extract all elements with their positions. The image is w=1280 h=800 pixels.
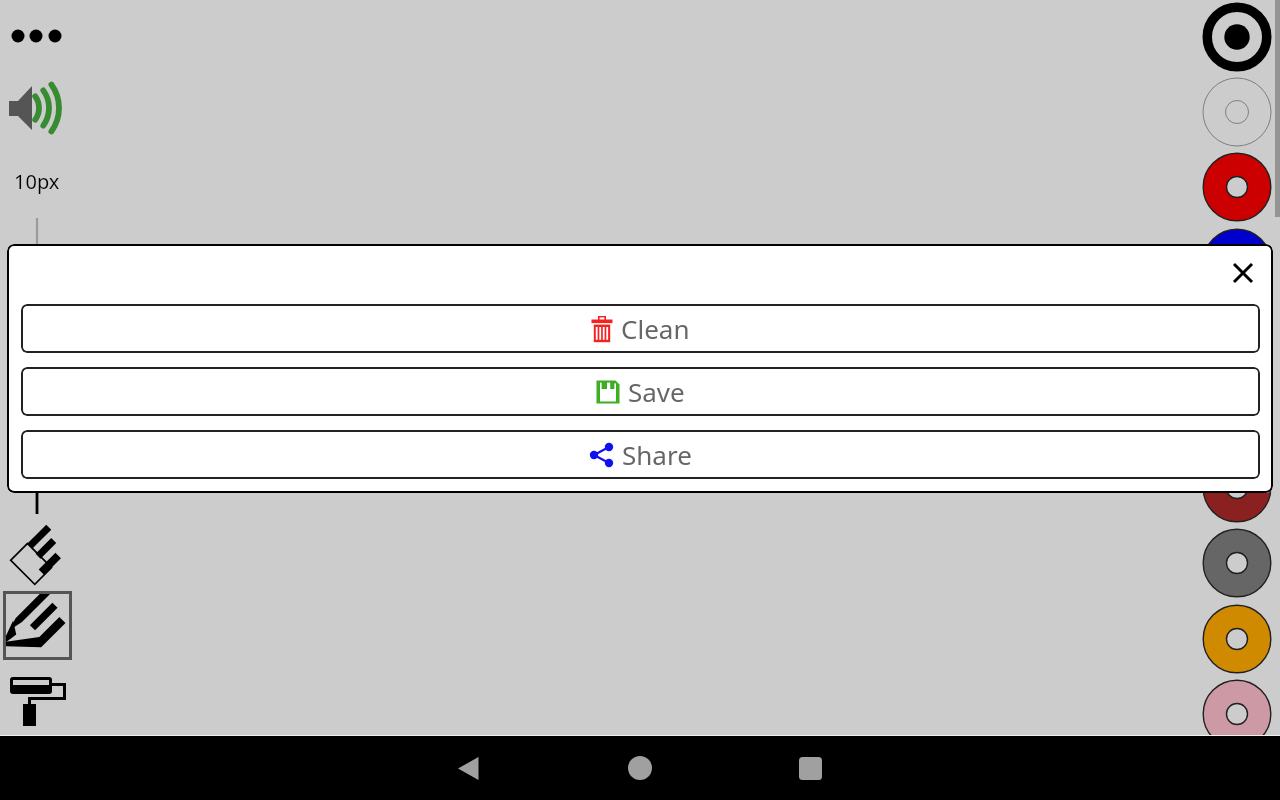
button[interactable]: Share [21,430,1260,479]
button[interactable]: Sound [8,85,70,137]
button[interactable]: Colour 10 [1201,678,1273,750]
button[interactable]: More options [6,18,66,54]
button[interactable]: Eraser [6,520,70,584]
button[interactable]: Colour 7 [1201,452,1273,524]
button[interactable]: Colour 1 [1201,1,1273,73]
staticText: Clean [621,311,690,346]
staticText: Save [628,374,685,409]
button[interactable]: Colour 4 [1201,227,1273,299]
button[interactable]: Colour 3 [1201,151,1273,223]
button[interactable]: Recents [782,740,838,796]
button[interactable]: Pencil [3,591,72,660]
button[interactable]: Colour 8 [1201,527,1273,599]
button[interactable]: Back [440,740,496,796]
button[interactable]: Colour 6 [1201,377,1273,449]
button[interactable]: Home [612,740,668,796]
button[interactable]: Fill [8,672,68,728]
button[interactable]: Save [21,367,1260,416]
staticText: 10px [14,168,60,195]
button[interactable]: Colour 2 [1201,76,1273,148]
staticText: Share [622,437,692,472]
button[interactable]: Close [1219,249,1267,297]
button[interactable]: Colour 5 [1201,302,1273,374]
button[interactable]: Colour 9 [1201,603,1273,675]
button[interactable]: Clean [21,304,1260,353]
